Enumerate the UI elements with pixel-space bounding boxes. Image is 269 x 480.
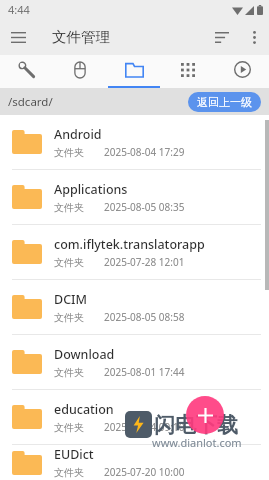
staticText: 2025-08-05 08:35 [104,200,185,214]
staticText: 文件夹 [54,201,104,214]
button[interactable]: EUDict [0,445,269,480]
staticText: 2025-08-01 17:44 [104,365,185,379]
button[interactable]: Android [0,115,269,169]
staticText: 文件管理 [52,28,110,46]
button[interactable]: Download [0,335,269,389]
button[interactable]: Applications [0,170,269,224]
staticText: 文件夹 [54,311,104,324]
staticText: education [54,401,114,418]
button[interactable]: education [0,390,269,444]
staticText: 2025-08-04 17:29 [104,145,185,159]
staticText: 2025-07-20 10:00 [104,465,185,479]
staticText: 2025-07-28 12:01 [104,255,185,269]
button[interactable]: 返回上一级 [188,92,261,112]
button[interactable]: Tools [0,55,53,88]
staticText: Android [54,126,102,143]
button[interactable]: DCIM [0,280,269,334]
button[interactable]: Files [107,55,161,88]
button[interactable]: Sort [205,20,239,54]
button[interactable]: com.iflytek.translatorapp [0,225,269,279]
staticText: 闪电下载 [154,412,238,438]
staticText: Download [54,346,115,363]
staticText: 文件夹 [54,421,104,434]
button[interactable]: Menu [0,19,36,55]
staticText: 文件夹 [54,146,104,159]
staticText: 2025-07-24 09:10 [104,420,185,434]
staticText: DCIM [54,291,87,308]
staticText: 文件夹 [54,256,104,269]
staticText: 返回上一级 [197,95,252,109]
staticText: www.dianlot.com [152,435,242,450]
staticText: 文件夹 [54,366,104,379]
staticText: 文件夹 [54,466,104,479]
button[interactable]: Media [215,55,269,88]
button[interactable]: Apps [161,55,215,88]
staticText: 4:44 [8,2,30,17]
staticText: /sdcard/ [8,94,53,110]
staticText: EUDict [54,446,94,463]
button[interactable]: Mouse [53,55,107,88]
button[interactable]: More options [239,22,269,52]
staticText: 2025-08-05 08:58 [104,310,185,324]
staticText: Applications [54,181,128,198]
staticText: com.iflytek.translatorapp [54,236,205,253]
